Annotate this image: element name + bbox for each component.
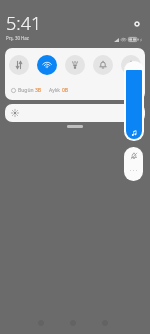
- button[interactable]: Flashlight: [61, 48, 89, 81]
- button[interactable]: Ring: [89, 48, 117, 81]
- staticText: Bugün: [18, 87, 35, 94]
- button[interactable]: Brightness: [5, 104, 145, 122]
- button[interactable]: Settings: [132, 19, 142, 29]
- button[interactable]: Wi-Fi: [33, 48, 61, 81]
- button[interactable]: Do not disturb: [124, 147, 143, 181]
- staticText: 0B: [62, 87, 69, 94]
- button[interactable]: Mobile data: [5, 48, 33, 81]
- staticText: 3B: [35, 87, 42, 94]
- staticText: Aylık: [49, 87, 62, 94]
- button[interactable]: Volume: [124, 61, 144, 141]
- staticText: 5:41: [6, 11, 42, 36]
- button[interactable]: Silent: [117, 48, 145, 81]
- button[interactable]: Bugün: [11, 81, 145, 100]
- staticText: Prş, 30 Haz: [6, 35, 29, 41]
